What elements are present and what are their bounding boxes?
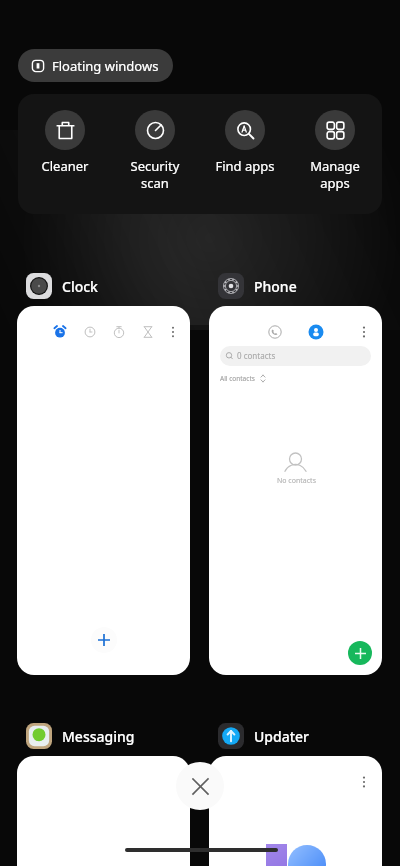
staticText: Messaging: [62, 727, 135, 746]
button[interactable]: Add contact: [348, 641, 372, 665]
staticText: Clock: [62, 277, 98, 296]
button[interactable]: Cleaner: [20, 94, 110, 175]
button[interactable]: Find apps: [200, 94, 290, 175]
button[interactable]: Clock app preview: [17, 306, 190, 675]
button[interactable]: Manage apps: [290, 94, 380, 192]
button[interactable]: Updater: [218, 723, 310, 749]
staticText: Security scan: [110, 157, 200, 192]
button[interactable]: Updater app preview: [209, 756, 382, 866]
button[interactable]: Clock: [26, 273, 98, 299]
staticText: Find apps: [200, 157, 290, 175]
staticText: Updater: [254, 727, 310, 746]
button[interactable]: Messaging app preview: [17, 756, 190, 866]
staticText: Floating windows: [52, 57, 159, 75]
staticText: Cleaner: [20, 157, 110, 175]
staticText: Manage apps: [290, 157, 380, 192]
button[interactable]: Floating windows: [18, 49, 173, 82]
staticText: 0 contacts: [237, 350, 276, 361]
button[interactable]: Security scan: [110, 94, 200, 192]
staticText: All contacts: [220, 374, 255, 383]
button[interactable]: Phone app preview: [209, 306, 382, 675]
button[interactable]: Add alarm: [91, 627, 117, 653]
staticText: Phone: [254, 277, 297, 296]
button[interactable]: Close all: [176, 762, 224, 810]
button[interactable]: Phone: [218, 273, 297, 299]
button[interactable]: Messaging: [26, 723, 135, 749]
staticText: No contacts: [277, 476, 316, 486]
